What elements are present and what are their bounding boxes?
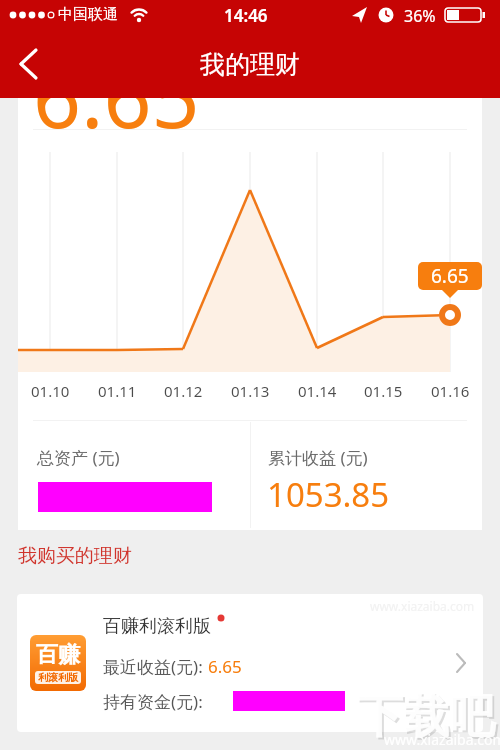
staticText: 1053.85 — [267, 472, 390, 517]
staticText: www.xiazaiba.com — [384, 730, 500, 749]
button[interactable]: 总资产 (元) — [18, 420, 250, 530]
staticText: 我购买的理财 — [18, 544, 132, 568]
staticText: 累计收益 (元) — [268, 446, 368, 469]
staticText: 中国联通 — [58, 5, 118, 24]
button[interactable]: 百赚 — [17, 594, 483, 732]
staticText: 01.11 — [98, 381, 137, 401]
staticText: 01.14 — [298, 381, 337, 401]
staticText: 01.16 — [431, 381, 470, 401]
staticText: 总资产 (元) — [37, 446, 120, 469]
staticText: 01.12 — [164, 381, 203, 401]
staticText: 下载吧 — [359, 690, 497, 748]
button[interactable]: 累计收益 (元) — [251, 420, 482, 530]
staticText: 下载吧 — [357, 688, 495, 746]
staticText: 36% — [404, 5, 436, 27]
staticText: www.xiazaiba.com — [370, 598, 475, 614]
staticText: 01.13 — [231, 381, 270, 401]
staticText: 6.65 — [33, 38, 200, 152]
staticText: 百赚 — [36, 641, 80, 669]
staticText: 我的理财 — [200, 49, 300, 80]
staticText: 14:46 — [224, 4, 268, 27]
staticText: 利滚利版 — [38, 671, 78, 684]
staticText: 百赚利滚利版 — [103, 615, 211, 638]
staticText: 持有资金(元): — [103, 690, 203, 713]
button[interactable] — [14, 49, 44, 79]
staticText: 01.15 — [364, 381, 403, 401]
staticText: 6.65 — [208, 655, 242, 678]
staticText: 01.10 — [31, 381, 70, 401]
staticText: 最近收益(元): — [103, 655, 208, 678]
staticText: 6.65 — [431, 263, 469, 289]
